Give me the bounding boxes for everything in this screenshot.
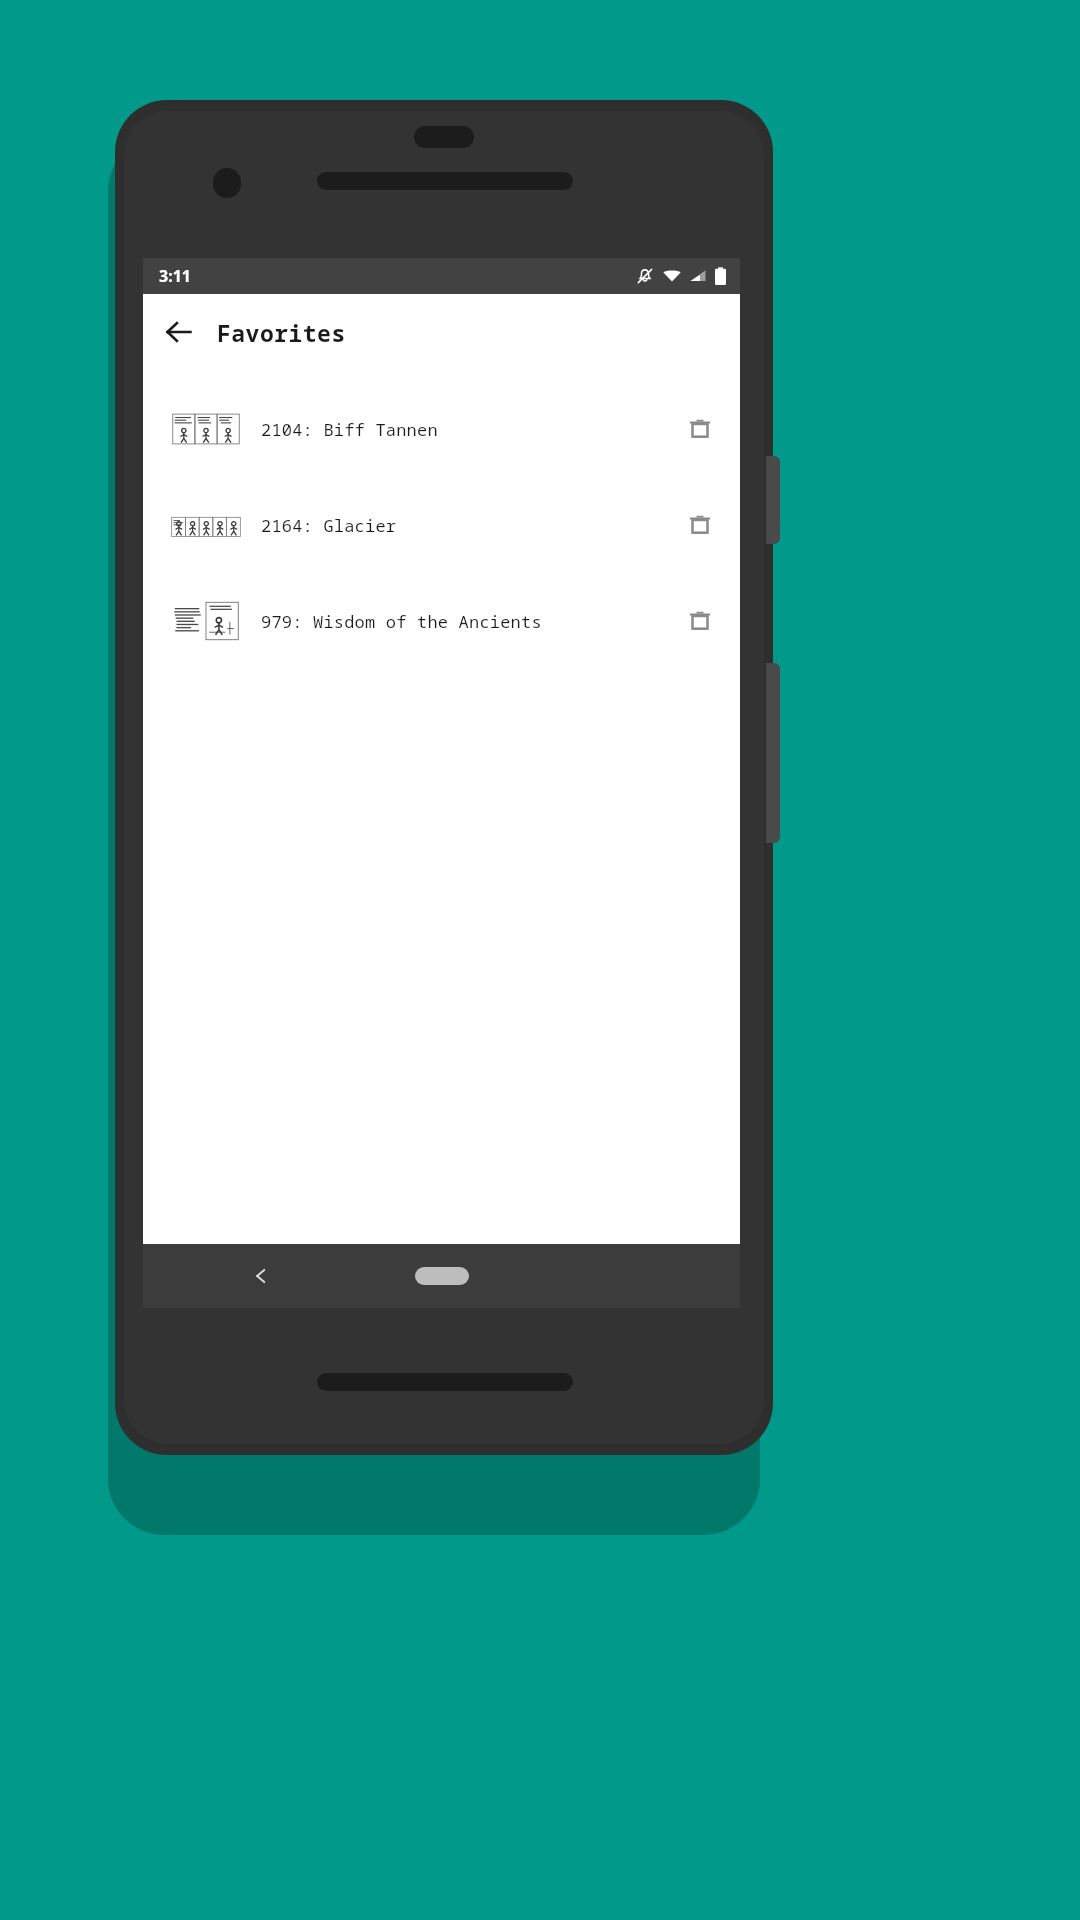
button[interactable]: Back [239,1254,283,1298]
staticText: 2104: Biff Tannen [261,418,672,441]
button[interactable]: 2164: Glacier [143,494,740,556]
staticText: 3:11 [159,265,191,287]
button[interactable]: Remove from favorites [672,497,728,553]
button[interactable]: Remove from favorites [672,593,728,649]
button[interactable]: 979: Wisdom of the Ancients [143,590,740,652]
button[interactable]: Remove from favorites [672,401,728,457]
button[interactable]: 2104: Biff Tannen [143,398,740,460]
staticText: Favorites [217,317,346,348]
button[interactable]: Back [155,308,203,356]
staticText: 979: Wisdom of the Ancients [261,610,672,633]
staticText: 2164: Glacier [261,514,672,537]
button[interactable]: Home [415,1267,469,1285]
